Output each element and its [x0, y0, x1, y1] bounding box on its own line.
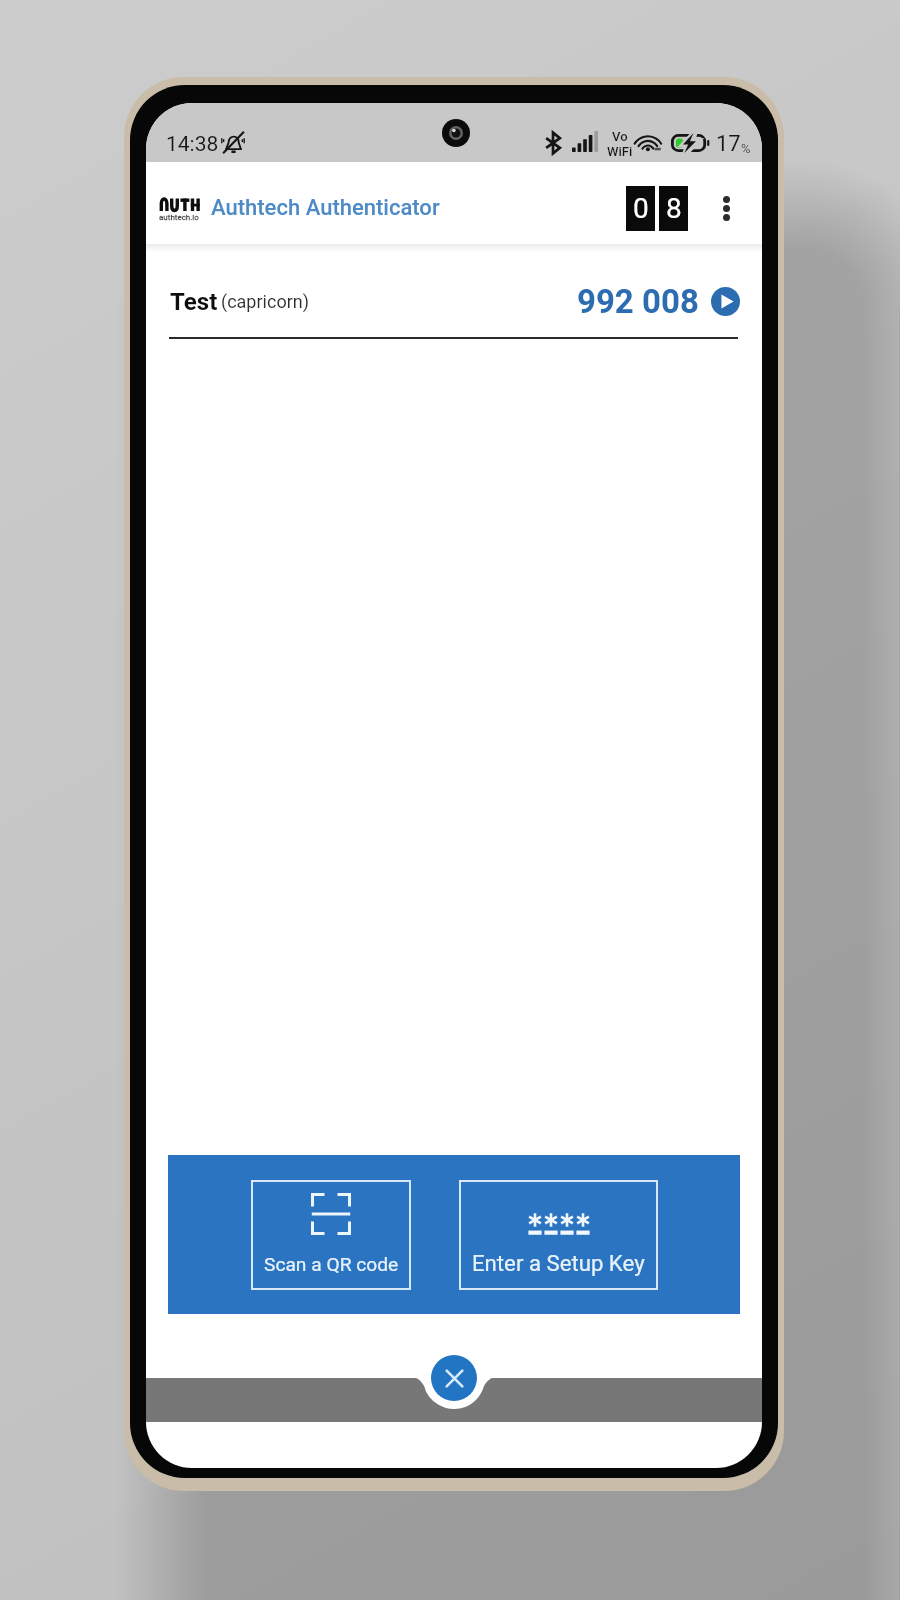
staticText: Enter a Setup Key [472, 1250, 645, 1276]
staticText: Test [170, 288, 218, 316]
button[interactable]: Scan a QR code [251, 1180, 411, 1290]
staticText: 8 [666, 192, 682, 225]
staticText: (capricorn) [221, 291, 309, 312]
staticText: WiFi [607, 144, 633, 159]
staticText: Scan a QR code [264, 1253, 399, 1276]
staticText: Vo [612, 129, 628, 144]
staticText: 992 008 [577, 282, 699, 321]
staticText: 17 [716, 131, 741, 157]
staticText: Authtech Authenticator [211, 195, 440, 221]
staticText: 0 [633, 192, 649, 225]
button[interactable]: Enter a Setup Key [459, 1180, 658, 1290]
staticText: 14:38 [166, 132, 219, 157]
button[interactable]: Test [146, 252, 762, 339]
button[interactable]: More options [702, 184, 750, 232]
staticText: % [741, 141, 751, 156]
staticText: authtech.io [159, 213, 199, 222]
button[interactable]: Close [431, 1355, 477, 1401]
